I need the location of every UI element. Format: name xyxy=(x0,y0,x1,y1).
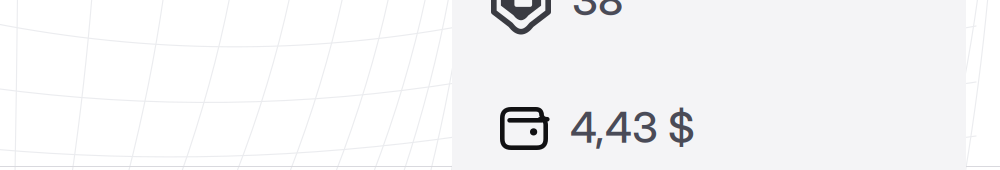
button[interactable]: 4,43 $ xyxy=(500,107,691,150)
staticText: 38 xyxy=(572,0,623,26)
button[interactable]: 38 xyxy=(491,0,621,36)
staticText: 4,43 $ xyxy=(570,101,695,153)
